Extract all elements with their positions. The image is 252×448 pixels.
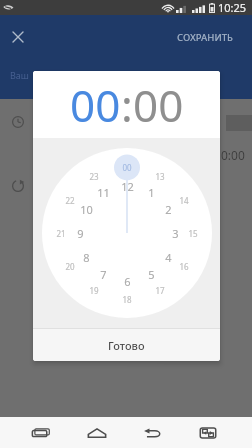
staticText: Ваш [10, 69, 29, 81]
staticText: 21 [56, 228, 66, 239]
button[interactable]: Back [137, 417, 167, 448]
staticText: 1 [148, 185, 155, 200]
button[interactable]: 00 [70, 75, 121, 135]
staticText: 2 [165, 202, 172, 217]
staticText: 0:00 [221, 147, 245, 163]
staticText: 20 [65, 261, 75, 272]
staticText: 5 [148, 267, 155, 282]
staticText: 10 [80, 202, 93, 217]
button[interactable]: Готово [33, 329, 220, 361]
staticText: 3 [172, 226, 179, 241]
staticText: 9 [77, 226, 84, 241]
staticText: : [121, 75, 133, 135]
staticText: 17 [155, 285, 165, 296]
staticText: СОХРАНИТЬ [177, 31, 233, 44]
button[interactable]: Recents [26, 417, 56, 448]
staticText: 14 [179, 195, 189, 206]
staticText: 11 [97, 185, 110, 200]
staticText: 13 [155, 171, 165, 182]
button[interactable]: 00 [133, 75, 184, 135]
staticText: 00 [122, 162, 132, 173]
button[interactable]: Home [82, 417, 112, 448]
staticText: 12 [121, 179, 134, 194]
button[interactable]: СОХРАНИТЬ [171, 26, 239, 49]
staticText: 6 [124, 274, 131, 289]
button[interactable]: Split screen [193, 417, 223, 448]
staticText: 23 [89, 171, 99, 182]
staticText: 7 [100, 267, 107, 282]
staticText: 16 [179, 261, 189, 272]
staticText: 4 [165, 250, 172, 265]
staticText: 15 [188, 228, 198, 239]
staticText: Готово [108, 338, 145, 353]
staticText: 8 [83, 250, 90, 265]
staticText: 22 [65, 195, 75, 206]
staticText: 19 [89, 285, 99, 296]
button[interactable]: Close [3, 22, 33, 52]
staticText: 18 [122, 294, 132, 305]
staticText: 10:25 [218, 0, 247, 15]
